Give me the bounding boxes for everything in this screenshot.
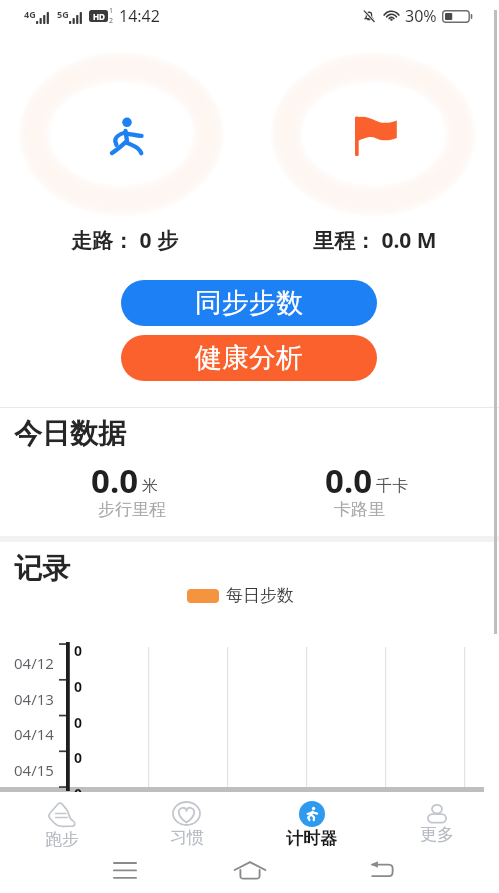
button[interactable]: 同步步数 (121, 280, 377, 326)
staticText: 走路： 0 步 (71, 226, 178, 255)
button[interactable]: 习惯 (124, 801, 249, 847)
staticText: 同步步数 (195, 286, 303, 320)
staticText: 0 (74, 784, 83, 803)
staticText: 计时器 (286, 828, 337, 847)
staticText: 里程： 0.0 M (313, 226, 437, 255)
staticText: 每日步数 (226, 585, 294, 606)
staticText: 0 (74, 641, 83, 660)
staticText: 今日数据 (14, 416, 126, 451)
staticText: 更多 (420, 824, 454, 845)
button[interactable]: Home (228, 848, 272, 892)
button[interactable]: 计时器 (249, 801, 374, 847)
staticText: 04/14 (14, 724, 54, 744)
staticText: 2 (109, 16, 114, 26)
staticText: 米 (142, 476, 158, 496)
staticText: 04/13 (14, 689, 54, 709)
staticText: 30% (405, 5, 437, 27)
staticText: 0 (74, 713, 83, 732)
staticText: 04/15 (14, 760, 54, 780)
button[interactable]: Back (359, 848, 403, 892)
staticText: 04/12 (14, 653, 54, 673)
staticText: 步行里程 (98, 499, 166, 519)
staticText: 0 (74, 677, 83, 696)
staticText: HD (93, 11, 105, 22)
staticText: 5G (57, 8, 69, 20)
staticText: 跑步 (45, 829, 79, 847)
staticText: 记录 (14, 551, 70, 586)
staticText: 卡路里 (334, 499, 385, 519)
button[interactable]: 跑步 (0, 801, 124, 847)
button[interactable]: Recent apps (103, 848, 147, 892)
staticText: 14:42 (119, 5, 160, 27)
staticText: 习惯 (170, 827, 204, 847)
staticText: 1 (109, 6, 114, 16)
staticText: 0.0 (91, 458, 139, 500)
staticText: 健康分析 (195, 341, 303, 375)
staticText: 4G (24, 8, 36, 20)
staticText: 千卡 (376, 476, 408, 496)
staticText: 0.0 (325, 458, 373, 500)
button[interactable]: 更多 (374, 801, 499, 847)
staticText: 0 (74, 748, 83, 767)
button[interactable]: 健康分析 (121, 335, 377, 381)
